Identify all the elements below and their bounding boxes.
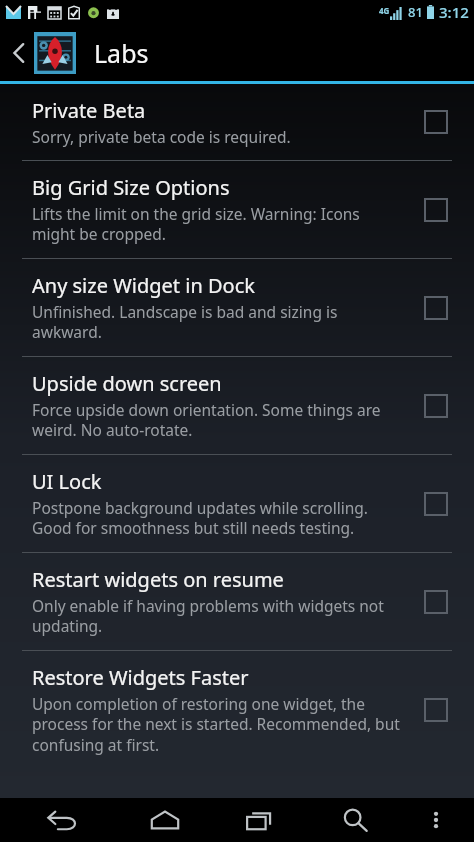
button[interactable]: Private Beta: [0, 84, 474, 160]
button[interactable]: Upside down screen: [0, 357, 474, 454]
staticText: Restore Widgets Faster: [32, 664, 249, 691]
button[interactable]: Big Grid Size Options: [0, 161, 474, 258]
button[interactable]: Recent apps: [212, 798, 307, 842]
staticText: Labs: [94, 36, 149, 70]
button[interactable]: Home: [117, 798, 212, 842]
button[interactable]: Toggle Restore Widgets Faster: [416, 690, 456, 730]
staticText: Big Grid Size Options: [32, 174, 230, 201]
staticText: Only enable if having problems with widg…: [32, 595, 402, 637]
staticText: 3:12: [439, 2, 469, 22]
button[interactable]: Toggle Big Grid Size Options: [416, 190, 456, 230]
staticText: Unfinished. Landscape is bad and sizing …: [32, 301, 402, 343]
button[interactable]: Toggle Upside down screen: [416, 386, 456, 426]
staticText: Lifts the limit on the grid size. Warnin…: [32, 203, 402, 245]
button[interactable]: UI Lock: [0, 455, 474, 552]
staticText: 4G: [379, 5, 390, 16]
button[interactable]: Any size Widget in Dock: [0, 259, 474, 356]
staticText: Upside down screen: [32, 370, 222, 397]
staticText: Private Beta: [32, 97, 146, 124]
staticText: Sorry, private beta code is required.: [32, 126, 291, 147]
staticText: Force upside down orientation. Some thin…: [32, 399, 402, 441]
staticText: 81: [408, 3, 423, 21]
button[interactable]: Toggle UI Lock: [416, 484, 456, 524]
staticText: Any size Widget in Dock: [32, 272, 255, 299]
button[interactable]: Back: [8, 798, 117, 842]
button[interactable]: Navigate up: [0, 24, 84, 81]
staticText: Upon completion of restoring one widget,…: [32, 693, 402, 756]
button[interactable]: Toggle Private Beta: [416, 102, 456, 142]
button[interactable]: Toggle Any size Widget in Dock: [416, 288, 456, 328]
button[interactable]: Search: [307, 798, 402, 842]
button[interactable]: More options: [402, 798, 470, 842]
button[interactable]: Restart widgets on resume: [0, 553, 474, 650]
button[interactable]: Toggle Restart widgets on resume: [416, 582, 456, 622]
staticText: Restart widgets on resume: [32, 566, 284, 593]
button[interactable]: Restore Widgets Faster: [0, 651, 474, 769]
staticText: UI Lock: [32, 468, 102, 495]
staticText: Postpone background updates while scroll…: [32, 497, 402, 539]
